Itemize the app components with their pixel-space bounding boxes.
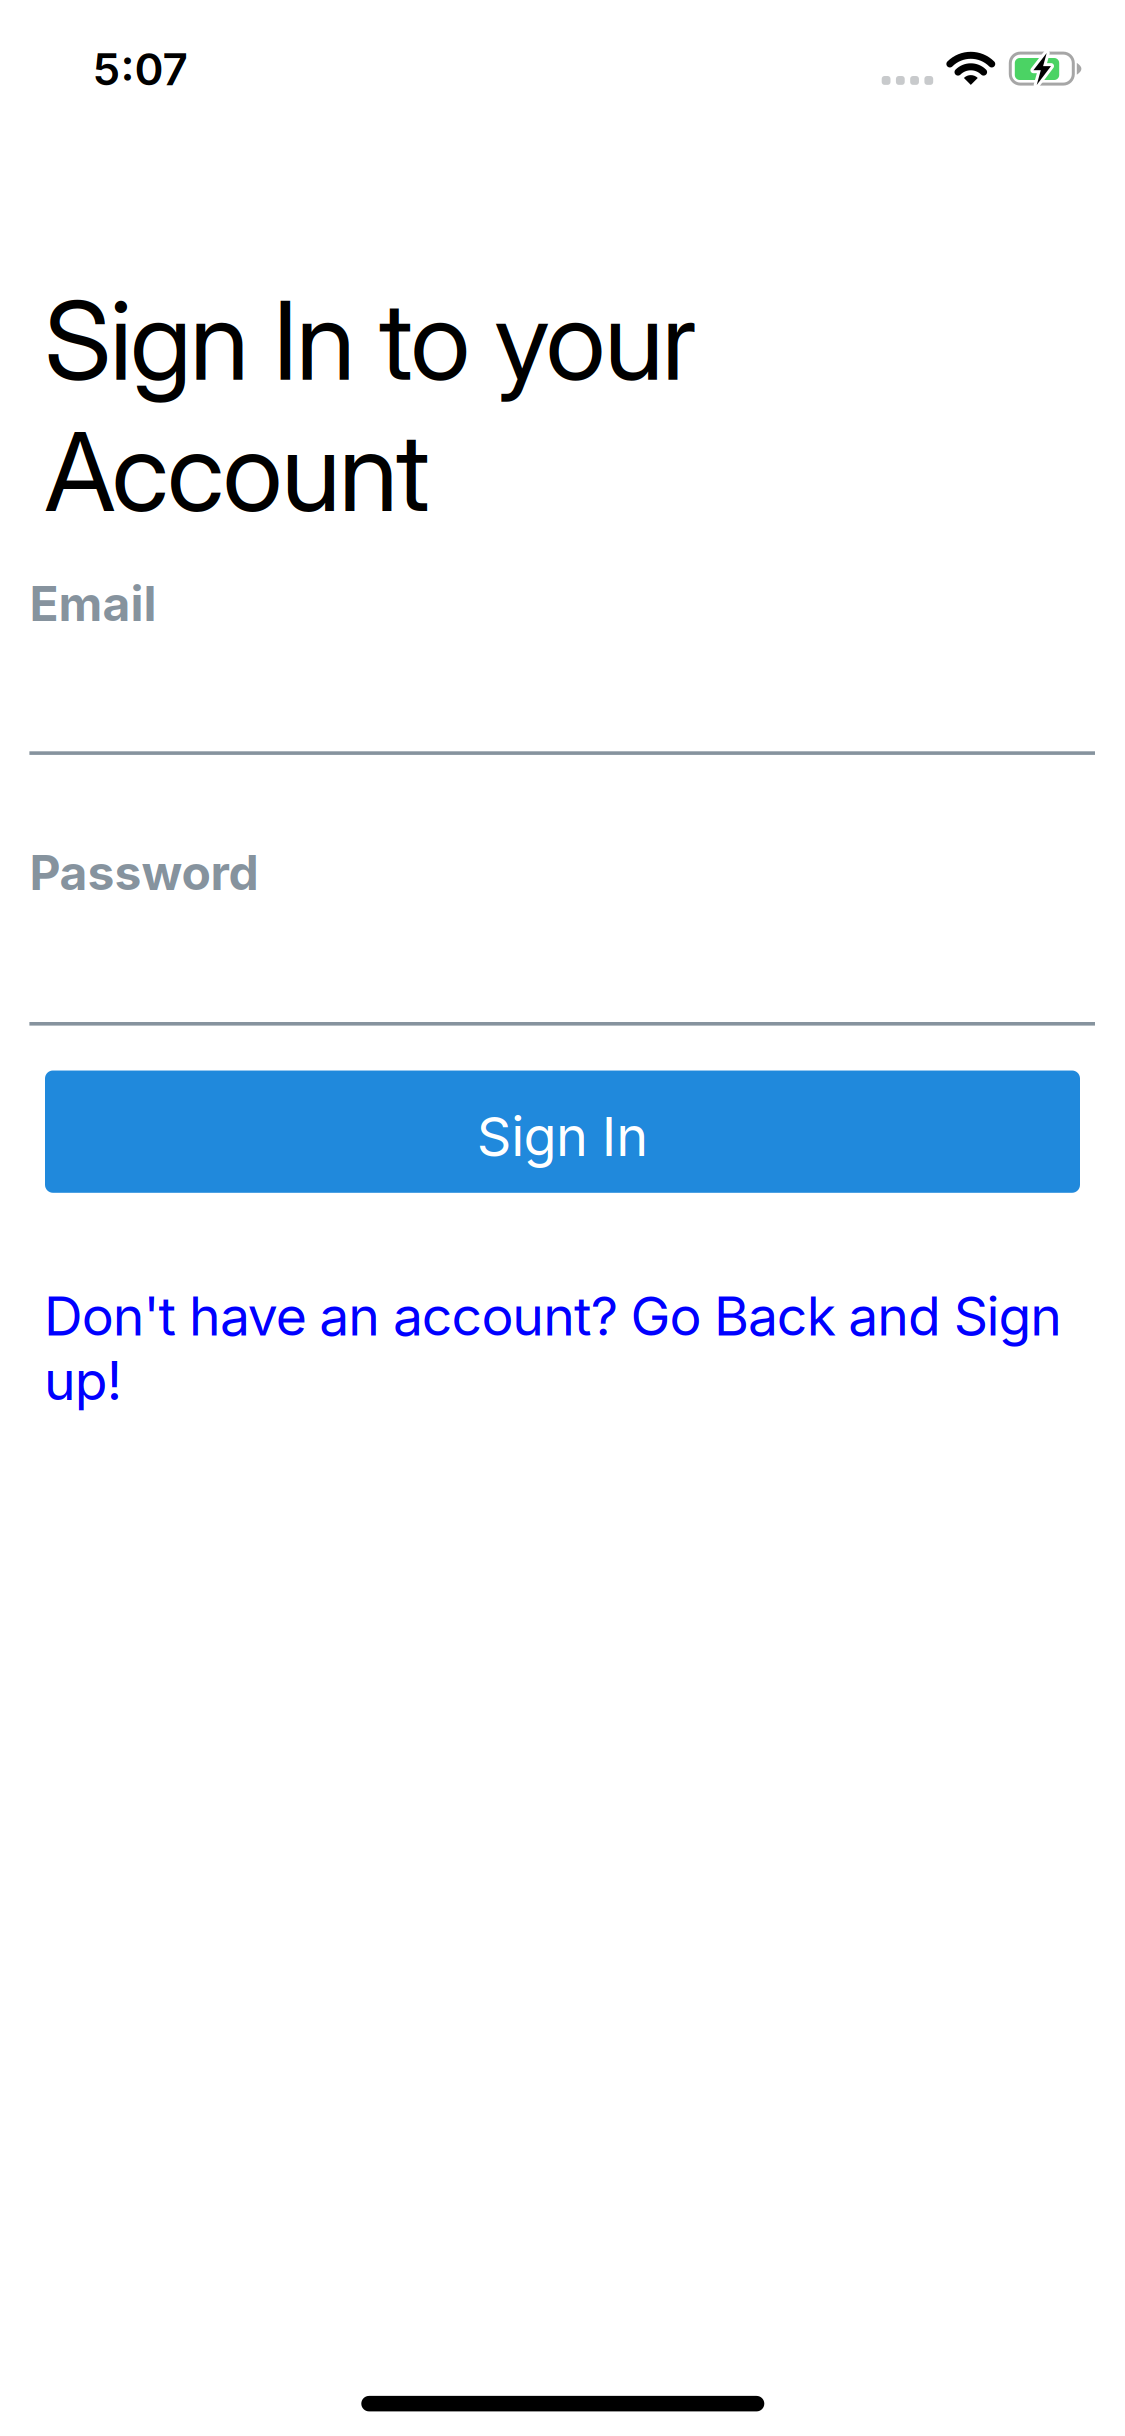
staticText: Password bbox=[29, 843, 258, 901]
button[interactable]: Email bbox=[29, 625, 1095, 755]
staticText: up! bbox=[44, 1348, 122, 1413]
staticText: Sign In bbox=[477, 1104, 648, 1169]
staticText: Email bbox=[29, 574, 156, 632]
button[interactable]: Don't have an account? Go Back and Sign bbox=[44, 1284, 1062, 1348]
staticText: Sign In to your Account bbox=[44, 275, 697, 537]
button[interactable]: Password bbox=[29, 896, 1095, 1026]
staticText: Don't have an account? Go Back and Sign bbox=[44, 1284, 1062, 1348]
button[interactable]: Sign In bbox=[45, 1070, 1080, 1193]
staticText: 5:07 bbox=[92, 42, 187, 96]
